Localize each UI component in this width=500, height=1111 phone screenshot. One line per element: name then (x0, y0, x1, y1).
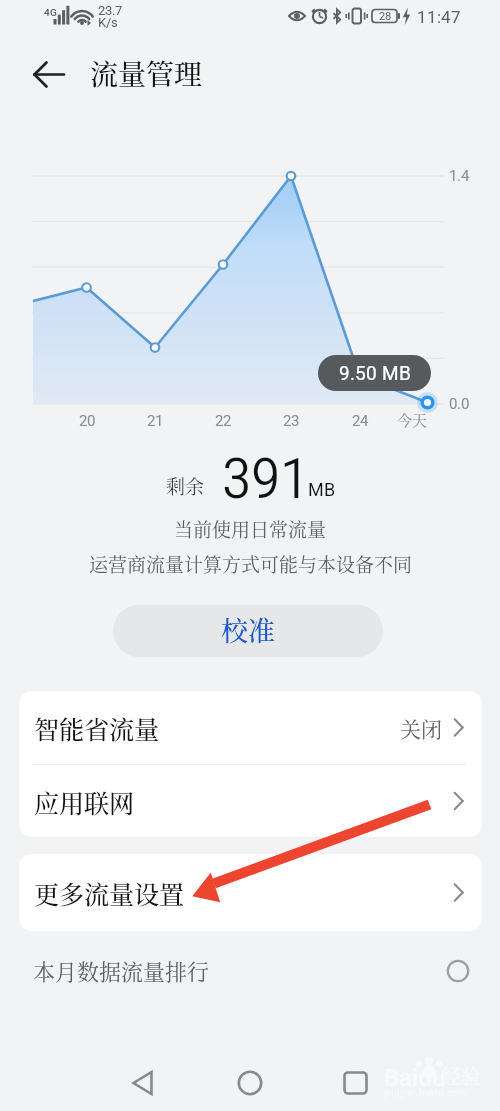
button[interactable] (318, 355, 431, 391)
button[interactable]: Home (222, 1055, 278, 1111)
button[interactable]: 更多流量设置 (19, 854, 482, 931)
button[interactable]: 本月数据流量排行 (0, 945, 500, 1000)
button[interactable]: 校准 (113, 605, 383, 657)
button[interactable]: 应用联网 (19, 765, 482, 837)
button[interactable]: Recents (327, 1055, 383, 1111)
button[interactable]: Back (22, 50, 72, 100)
button[interactable]: 智能省流量 (19, 691, 482, 764)
button[interactable]: Back (115, 1055, 171, 1111)
